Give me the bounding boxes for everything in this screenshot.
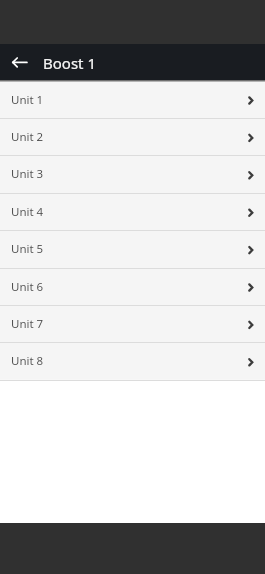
button[interactable]: Unit 2 [0,118,265,155]
staticText: Boost 1 [43,53,96,69]
button[interactable]: Unit 8 [0,342,265,379]
staticText: Unit 4 [11,204,44,220]
button[interactable]: Unit 7 [0,305,265,342]
staticText: Unit 6 [11,279,44,295]
button[interactable]: Unit 5 [0,230,265,267]
button[interactable]: Unit 1 [0,81,265,118]
staticText: Unit 2 [11,129,44,145]
staticText: Unit 1 [11,92,44,108]
staticText: Unit 8 [11,353,44,369]
button[interactable]: Unit 4 [0,193,265,230]
button[interactable]: Navigate up [0,44,39,80]
button[interactable]: Unit 6 [0,268,265,305]
staticText: Unit 5 [11,241,44,257]
staticText: Unit 3 [11,166,44,182]
staticText: Unit 7 [11,316,44,332]
button[interactable]: Unit 3 [0,155,265,192]
